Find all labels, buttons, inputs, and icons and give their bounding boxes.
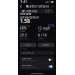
button[interactable]: San Francisco: [18, 9, 56, 13]
staticText: Daily forecast summary: [21, 60, 37, 62]
staticText: Severe alerts: [21, 65, 32, 66]
staticText: 9:41: [21, 0, 28, 4]
button[interactable]: San Francisco, CA: [20, 51, 54, 55]
staticText: Add City: [43, 44, 49, 46]
staticText: Wind: [38, 30, 41, 32]
staticText: 72%: [48, 24, 54, 28]
staticText: in: [30, 22, 31, 24]
staticText: UV index: [38, 37, 44, 39]
button[interactable]: Severe alerts: [20, 63, 54, 70]
staticText: Storms and warnings: [21, 67, 36, 68]
staticText: 62°: [45, 9, 50, 13]
staticText: 1.58: [20, 17, 30, 25]
staticText: 12 mph: [38, 27, 50, 30]
button[interactable]: Add City: [38, 43, 54, 47]
staticText: 4 / 10: [38, 34, 47, 37]
button[interactable]: Back: [19, 4, 23, 9]
staticText: Humidity: [20, 30, 25, 32]
staticText: 29.9: [20, 34, 27, 37]
staticText: San Francisco: [21, 9, 37, 13]
staticText: Pressure: [20, 37, 28, 39]
staticText: LOCATION: [20, 48, 27, 50]
staticText: Share: [26, 44, 31, 46]
button[interactable]: Notifications: [20, 56, 54, 63]
button[interactable]: More options: [51, 4, 55, 9]
staticText: Forecast precipitation: [20, 12, 39, 19]
staticText: Notifications: [21, 58, 31, 60]
staticText: Chance of rain: [20, 25, 30, 27]
staticText: 68%: [20, 27, 26, 30]
staticText: Weather Details: [25, 5, 48, 8]
button[interactable]: Share: [20, 43, 36, 47]
staticText: San Francisco, CA: [21, 52, 34, 54]
